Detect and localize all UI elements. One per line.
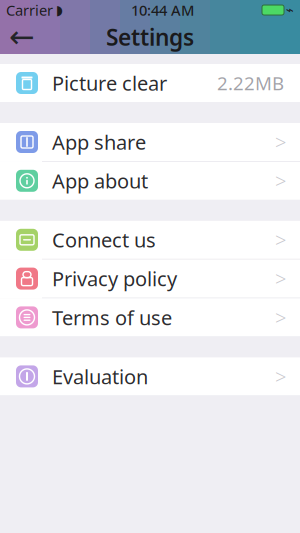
staticText: > (275, 129, 286, 155)
staticText: > (275, 304, 286, 331)
staticText: 2.22MB (217, 71, 284, 95)
staticText: > (275, 363, 286, 390)
staticText: ◗ (56, 2, 63, 17)
staticText: Picture clear (52, 70, 167, 96)
staticText: Privacy policy (52, 265, 177, 292)
button[interactable]: App share (0, 123, 300, 162)
button[interactable]: Terms of use (0, 298, 300, 336)
staticText: ← (9, 20, 35, 54)
button[interactable]: Back (0, 21, 44, 53)
button[interactable]: Connect us (0, 221, 300, 260)
button[interactable]: App about (0, 162, 300, 200)
staticText: App about (52, 167, 148, 194)
button[interactable]: Privacy policy (0, 260, 300, 298)
staticText: Carrier (6, 0, 53, 20)
staticText: ⌁ (286, 2, 294, 17)
staticText: > (275, 226, 286, 253)
staticText: > (275, 167, 286, 194)
staticText: Evaluation (52, 363, 148, 390)
staticText: Settings (106, 22, 194, 52)
staticText: 10:44 AM (131, 0, 194, 20)
staticText: Connect us (52, 226, 156, 253)
staticText: Terms of use (52, 304, 172, 331)
staticText: App share (52, 129, 146, 155)
button[interactable]: Evaluation (0, 357, 300, 395)
staticText: > (275, 265, 286, 292)
button[interactable]: Picture clear (0, 64, 300, 102)
